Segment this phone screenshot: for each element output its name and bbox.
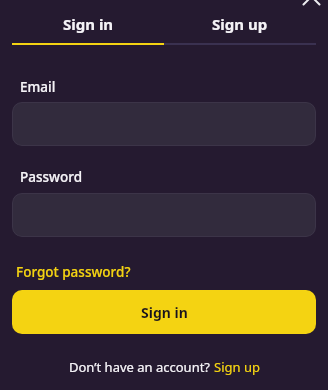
staticText: Email (20, 78, 56, 96)
button[interactable]: Sign in (12, 0, 164, 45)
button[interactable]: Forgot password? (16, 263, 131, 281)
staticText: Sign in (141, 303, 188, 322)
button[interactable]: Sign up (214, 358, 260, 376)
staticText: Sign up (214, 358, 260, 376)
staticText: Don’t have an account? (69, 358, 214, 376)
staticText: Sign in (63, 14, 114, 34)
staticText: Forgot password? (16, 263, 131, 281)
button[interactable]: Sign up (164, 0, 316, 45)
button[interactable] (300, 0, 324, 4)
staticText: Sign up (212, 14, 268, 34)
button[interactable]: Sign in (12, 290, 316, 334)
staticText: Password (20, 168, 83, 186)
